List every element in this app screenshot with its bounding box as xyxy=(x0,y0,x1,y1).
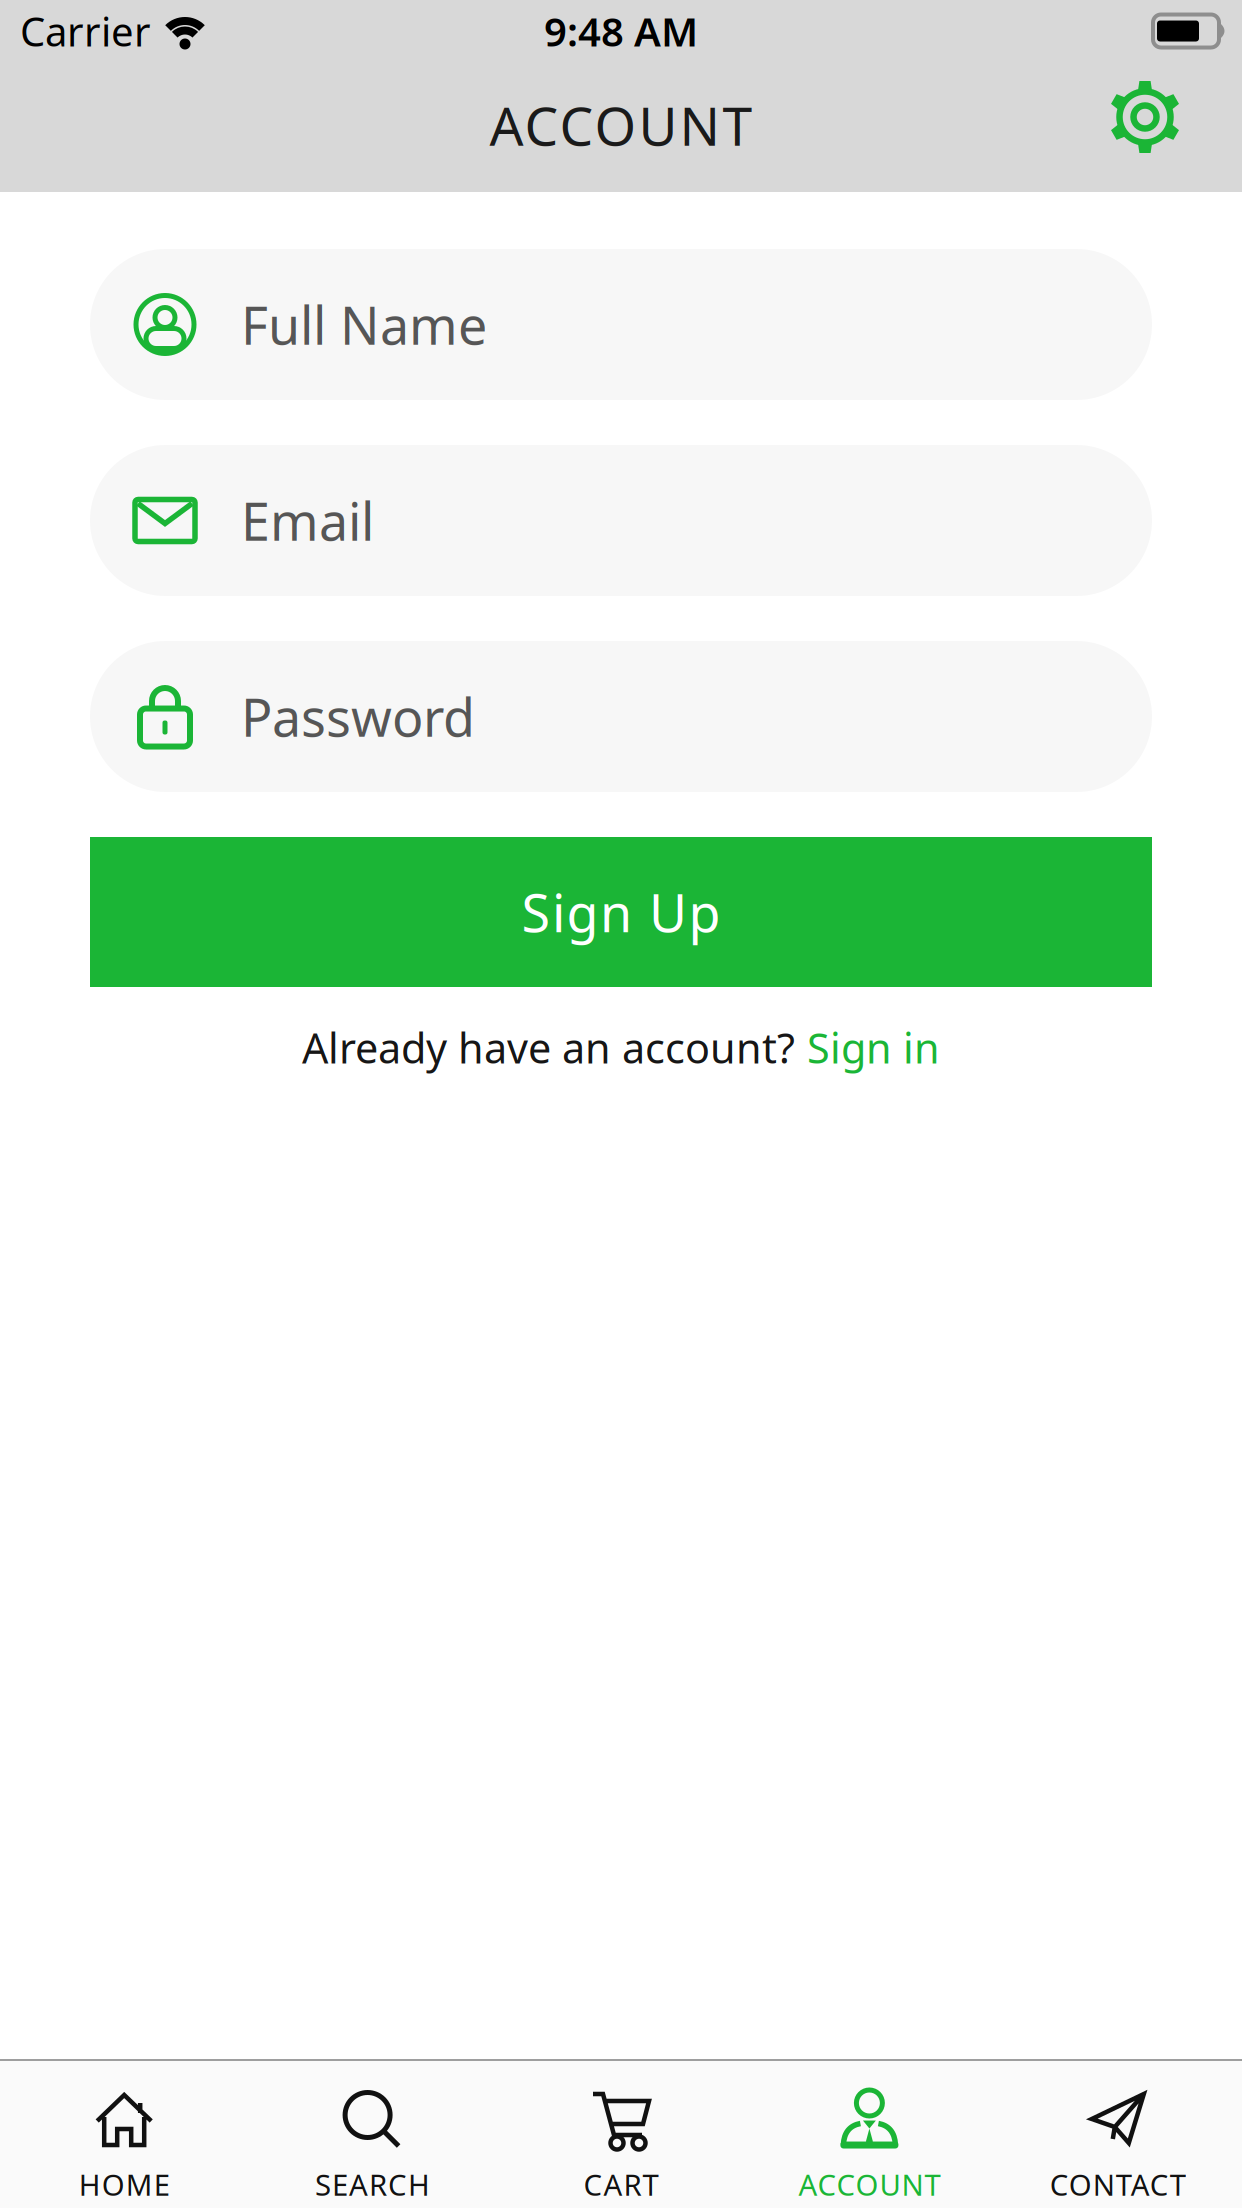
staticText: Sign in xyxy=(807,1020,940,1075)
staticText: Already have an account? xyxy=(302,1020,795,1075)
staticText: ACCOUNT xyxy=(489,90,752,160)
staticText: Carrier xyxy=(20,4,151,57)
button[interactable]: CONTACT xyxy=(994,2061,1242,2204)
button[interactable]: Sign Up xyxy=(90,837,1152,987)
staticText: ACCOUNT xyxy=(798,2165,940,2204)
button[interactable]: Full Name xyxy=(90,249,1152,400)
button[interactable]: Settings xyxy=(1109,81,1181,153)
button[interactable]: ACCOUNT xyxy=(745,2061,994,2204)
button[interactable]: Password xyxy=(90,641,1152,792)
staticText: Email xyxy=(241,486,374,555)
button[interactable]: Email xyxy=(90,445,1152,596)
staticText: 9:48 AM xyxy=(544,4,698,57)
staticText: CONTACT xyxy=(1050,2165,1186,2204)
button[interactable]: SEARCH xyxy=(248,2061,497,2204)
staticText: SEARCH xyxy=(315,2165,430,2204)
staticText: Sign Up xyxy=(521,877,720,947)
staticText: CART xyxy=(583,2165,658,2204)
staticText: Full Name xyxy=(241,290,487,359)
button[interactable]: Sign in xyxy=(807,1020,940,1075)
staticText: Password xyxy=(241,682,475,751)
staticText: HOME xyxy=(79,2165,170,2204)
button[interactable]: HOME xyxy=(0,2061,248,2204)
button[interactable]: CART xyxy=(497,2061,745,2204)
